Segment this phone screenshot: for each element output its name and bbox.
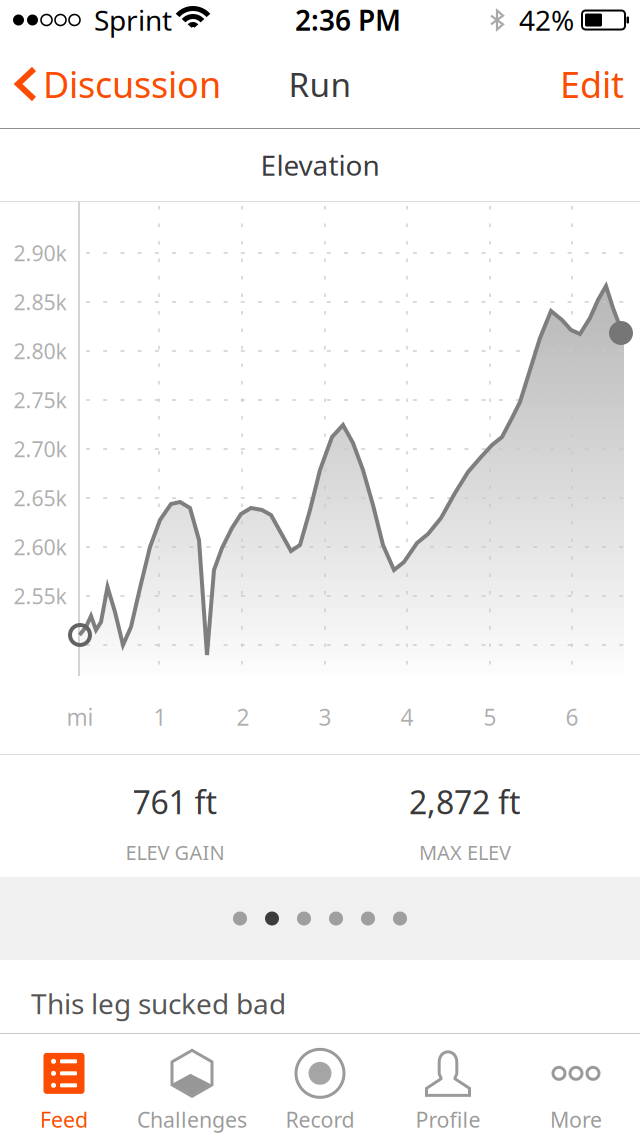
button[interactable]: Record [256, 1034, 384, 1136]
staticText: Profile [415, 1105, 480, 1134]
staticText: Run [288, 62, 351, 106]
staticText: Challenges [137, 1105, 247, 1134]
staticText: Feed [40, 1105, 88, 1134]
staticText: More [550, 1105, 602, 1134]
staticText: 5 [483, 702, 496, 732]
staticText: 2.75k [13, 386, 66, 414]
button[interactable]: Challenges [128, 1034, 256, 1136]
staticText: 1 [153, 702, 166, 732]
staticText: mi [66, 702, 93, 732]
staticText: Record [285, 1105, 354, 1134]
staticText: ELEV GAIN [125, 839, 224, 866]
button[interactable]: Profile [384, 1034, 512, 1136]
staticText: 2.85k [13, 288, 66, 316]
staticText: 761 ft [132, 780, 217, 823]
button[interactable]: This leg sucked bad [0, 960, 640, 1033]
staticText: 2,872 ft [409, 780, 521, 823]
staticText: 2.65k [13, 484, 66, 512]
staticText: 42% [519, 1, 574, 39]
staticText: This leg sucked bad [31, 985, 286, 1022]
staticText: Elevation [260, 146, 379, 184]
staticText: 2 [236, 702, 249, 732]
staticText: 2.55k [13, 582, 66, 610]
staticText: Sprint [80, 1, 172, 39]
staticText: MAX ELEV [419, 839, 511, 866]
staticText: 3 [318, 702, 331, 732]
button[interactable]: Feed [0, 1034, 128, 1136]
button[interactable]: Edit [538, 40, 640, 127]
staticText: 4 [400, 702, 413, 732]
staticText: Edit [560, 60, 624, 108]
staticText: 2.80k [13, 337, 66, 365]
staticText: Discussion [43, 60, 221, 108]
staticText: 6 [565, 702, 578, 732]
button[interactable]: More [512, 1034, 640, 1136]
button[interactable]: Discussion [0, 40, 237, 127]
staticText: 2:36 PM [295, 1, 401, 39]
staticText: 2.90k [13, 239, 66, 267]
staticText: 2.60k [13, 533, 66, 561]
staticText: 2.70k [13, 435, 66, 463]
